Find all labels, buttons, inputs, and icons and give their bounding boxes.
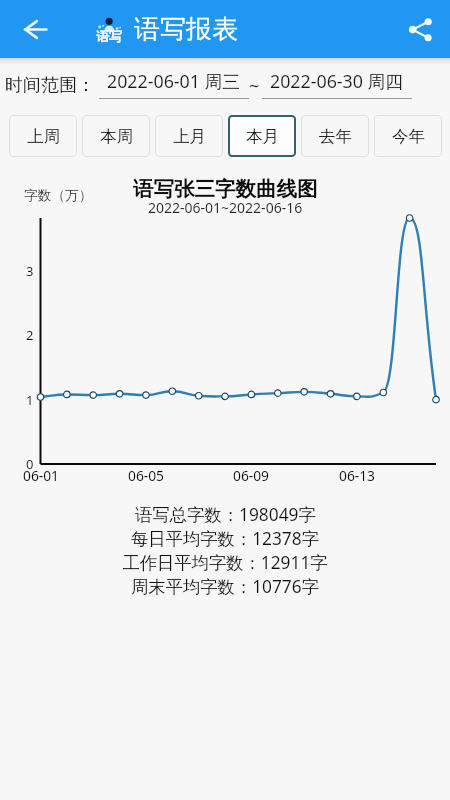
staticText: 语写 (96, 28, 122, 44)
staticText: 上周 (27, 126, 60, 147)
staticText: 本周 (100, 126, 133, 147)
staticText: 周末平均字数：10776字 (131, 575, 319, 599)
staticText: 本月 (246, 126, 279, 147)
button[interactable]: 本月 (228, 115, 296, 157)
staticText: 字数（万） (24, 187, 93, 204)
staticText: 去年 (319, 126, 352, 147)
button[interactable]: Share (394, 0, 446, 58)
staticText: 时间范围： (5, 74, 95, 97)
staticText: 2022-06-01~2022-06-16 (148, 198, 303, 217)
staticText: 语写报表 (134, 13, 238, 46)
staticText: 06-09 (233, 466, 270, 485)
staticText: 0 (26, 455, 34, 473)
staticText: 语写总字数：198049字 (135, 503, 316, 527)
staticText: 2022-06-01 周三 (107, 69, 241, 93)
button[interactable]: Back (11, 0, 59, 58)
staticText: 2022-06-30 周四 (270, 69, 404, 93)
staticText: ~ (249, 74, 260, 99)
button[interactable]: 2022-06-01 周三 (99, 69, 249, 99)
staticText: 每日平均字数：12378字 (131, 527, 319, 551)
button[interactable]: 本周 (82, 115, 150, 157)
staticText: 06-13 (339, 466, 376, 485)
staticText: 1 (26, 391, 34, 409)
staticText: 上月 (173, 126, 206, 147)
staticText: 语写张三字数曲线图 (133, 176, 318, 202)
staticText: 今年 (392, 126, 425, 147)
staticText: 2 (26, 326, 34, 344)
staticText: 工作日平均字数：12911字 (122, 551, 328, 575)
button[interactable]: 今年 (374, 115, 442, 157)
staticText: 06-01 (23, 466, 60, 485)
button[interactable]: 上月 (155, 115, 223, 157)
staticText: 06-05 (128, 466, 165, 485)
staticText: 3 (26, 262, 34, 280)
button[interactable]: 去年 (301, 115, 369, 157)
button[interactable]: 上周 (9, 115, 77, 157)
button[interactable]: 2022-06-30 周四 (262, 69, 412, 99)
